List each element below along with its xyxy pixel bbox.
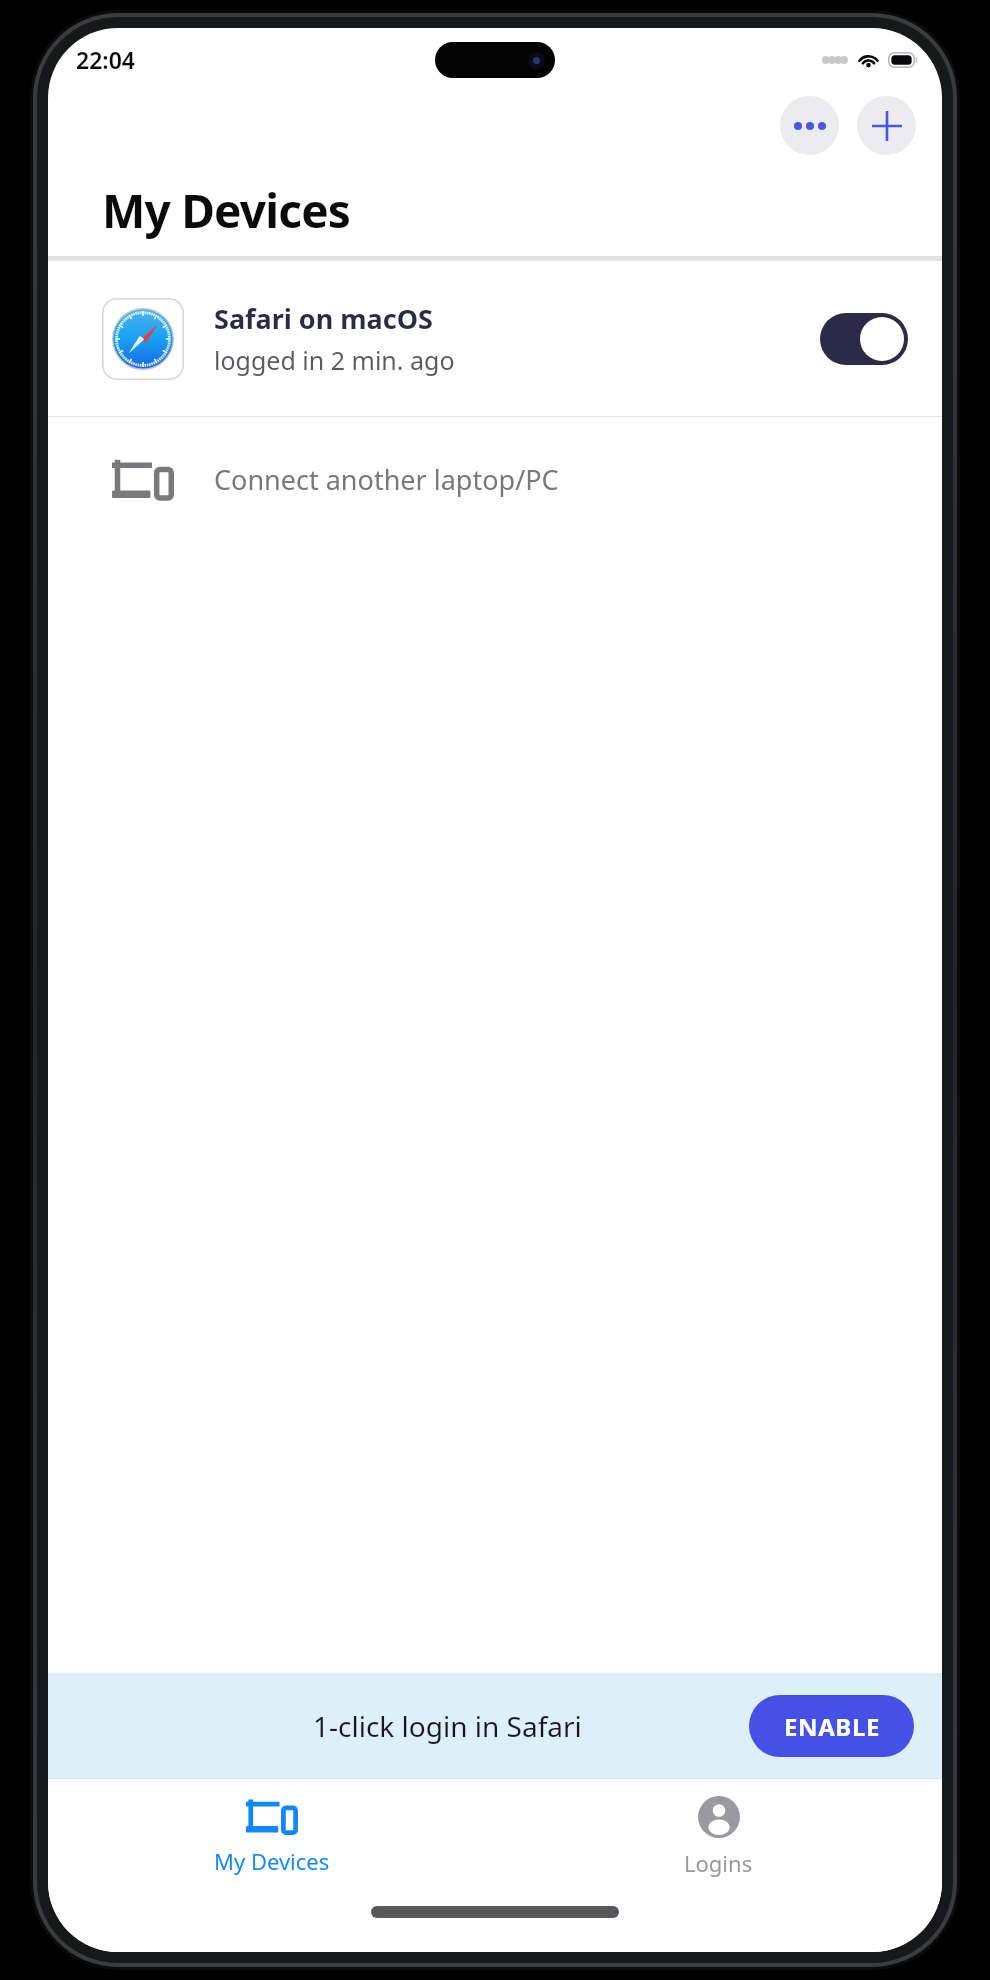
- button[interactable]: My Devices: [48, 1779, 495, 1894]
- staticText: Connect another laptop/PC: [214, 461, 559, 498]
- staticText: My Devices: [102, 179, 351, 242]
- staticText: ENABLE: [784, 1710, 880, 1743]
- staticText: 1-click login in Safari: [313, 1707, 582, 1745]
- button[interactable]: Safari on macOS: [48, 261, 942, 416]
- button[interactable]: Device enabled toggle: [820, 313, 908, 365]
- button[interactable]: Add device: [857, 96, 916, 155]
- staticText: Logins: [684, 1848, 753, 1878]
- staticText: 22:04: [76, 44, 135, 75]
- staticText: Safari on macOS: [214, 300, 433, 337]
- button[interactable]: Connect another laptop/PC: [48, 417, 942, 542]
- button[interactable]: ENABLE: [749, 1695, 914, 1757]
- staticText: logged in 2 min. ago: [214, 343, 455, 377]
- button[interactable]: More options: [780, 96, 839, 155]
- button[interactable]: Logins: [495, 1779, 942, 1894]
- staticText: My Devices: [214, 1846, 330, 1876]
